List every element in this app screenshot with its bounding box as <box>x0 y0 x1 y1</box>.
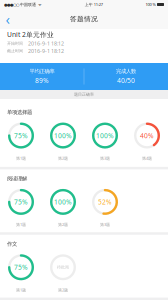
staticText: 75% <box>14 197 28 206</box>
staticText: 第2题 <box>58 222 68 227</box>
staticText: 待批阅 <box>57 265 69 270</box>
staticText: Unit 2单元作业 <box>7 30 54 39</box>
staticText: 40% <box>140 131 154 140</box>
staticText: 平均正确率 <box>29 68 54 75</box>
staticText: 第1题 <box>16 222 26 227</box>
staticText: 第2题 <box>58 287 68 293</box>
staticText: 52% <box>98 197 112 206</box>
staticText: 题目正确率 <box>74 92 94 97</box>
staticText: 截止时间 <box>7 49 23 53</box>
staticText: 完成人数 <box>116 68 136 75</box>
staticText: 单项选择题 <box>7 109 32 116</box>
staticText: 第3题 <box>100 156 110 161</box>
staticText: 75% <box>14 263 28 272</box>
staticText: ‹ <box>5 9 10 29</box>
staticText: 89% <box>35 76 49 85</box>
staticText: 第1题 <box>16 287 26 293</box>
staticText: 第1题 <box>16 156 26 161</box>
staticText: 作文 <box>7 241 17 247</box>
staticText: 100% <box>54 197 72 206</box>
staticText: 2016-9-1 18:12 <box>28 40 64 47</box>
staticText: 第2题 <box>58 156 68 161</box>
staticText: 100% <box>54 131 72 140</box>
staticText: 第3题 <box>100 222 110 227</box>
staticText: 40/50 <box>117 76 135 85</box>
staticText: ●●●○○ 中国联通 ᯤ <box>4 2 42 7</box>
staticText: 100 % <box>145 2 155 7</box>
button[interactable]: 返回 <box>0 9 16 29</box>
staticText: 2016-9-1 18:12 <box>28 47 64 55</box>
staticText: 75% <box>14 131 28 140</box>
staticText: 第4题 <box>142 156 152 161</box>
staticText: 100% <box>96 131 114 140</box>
staticText: 上午 11:27 <box>85 2 103 7</box>
staticText: 阅读理解 <box>7 175 27 182</box>
staticText: 开始时间 <box>7 41 23 46</box>
staticText: 答题情况 <box>70 15 98 23</box>
